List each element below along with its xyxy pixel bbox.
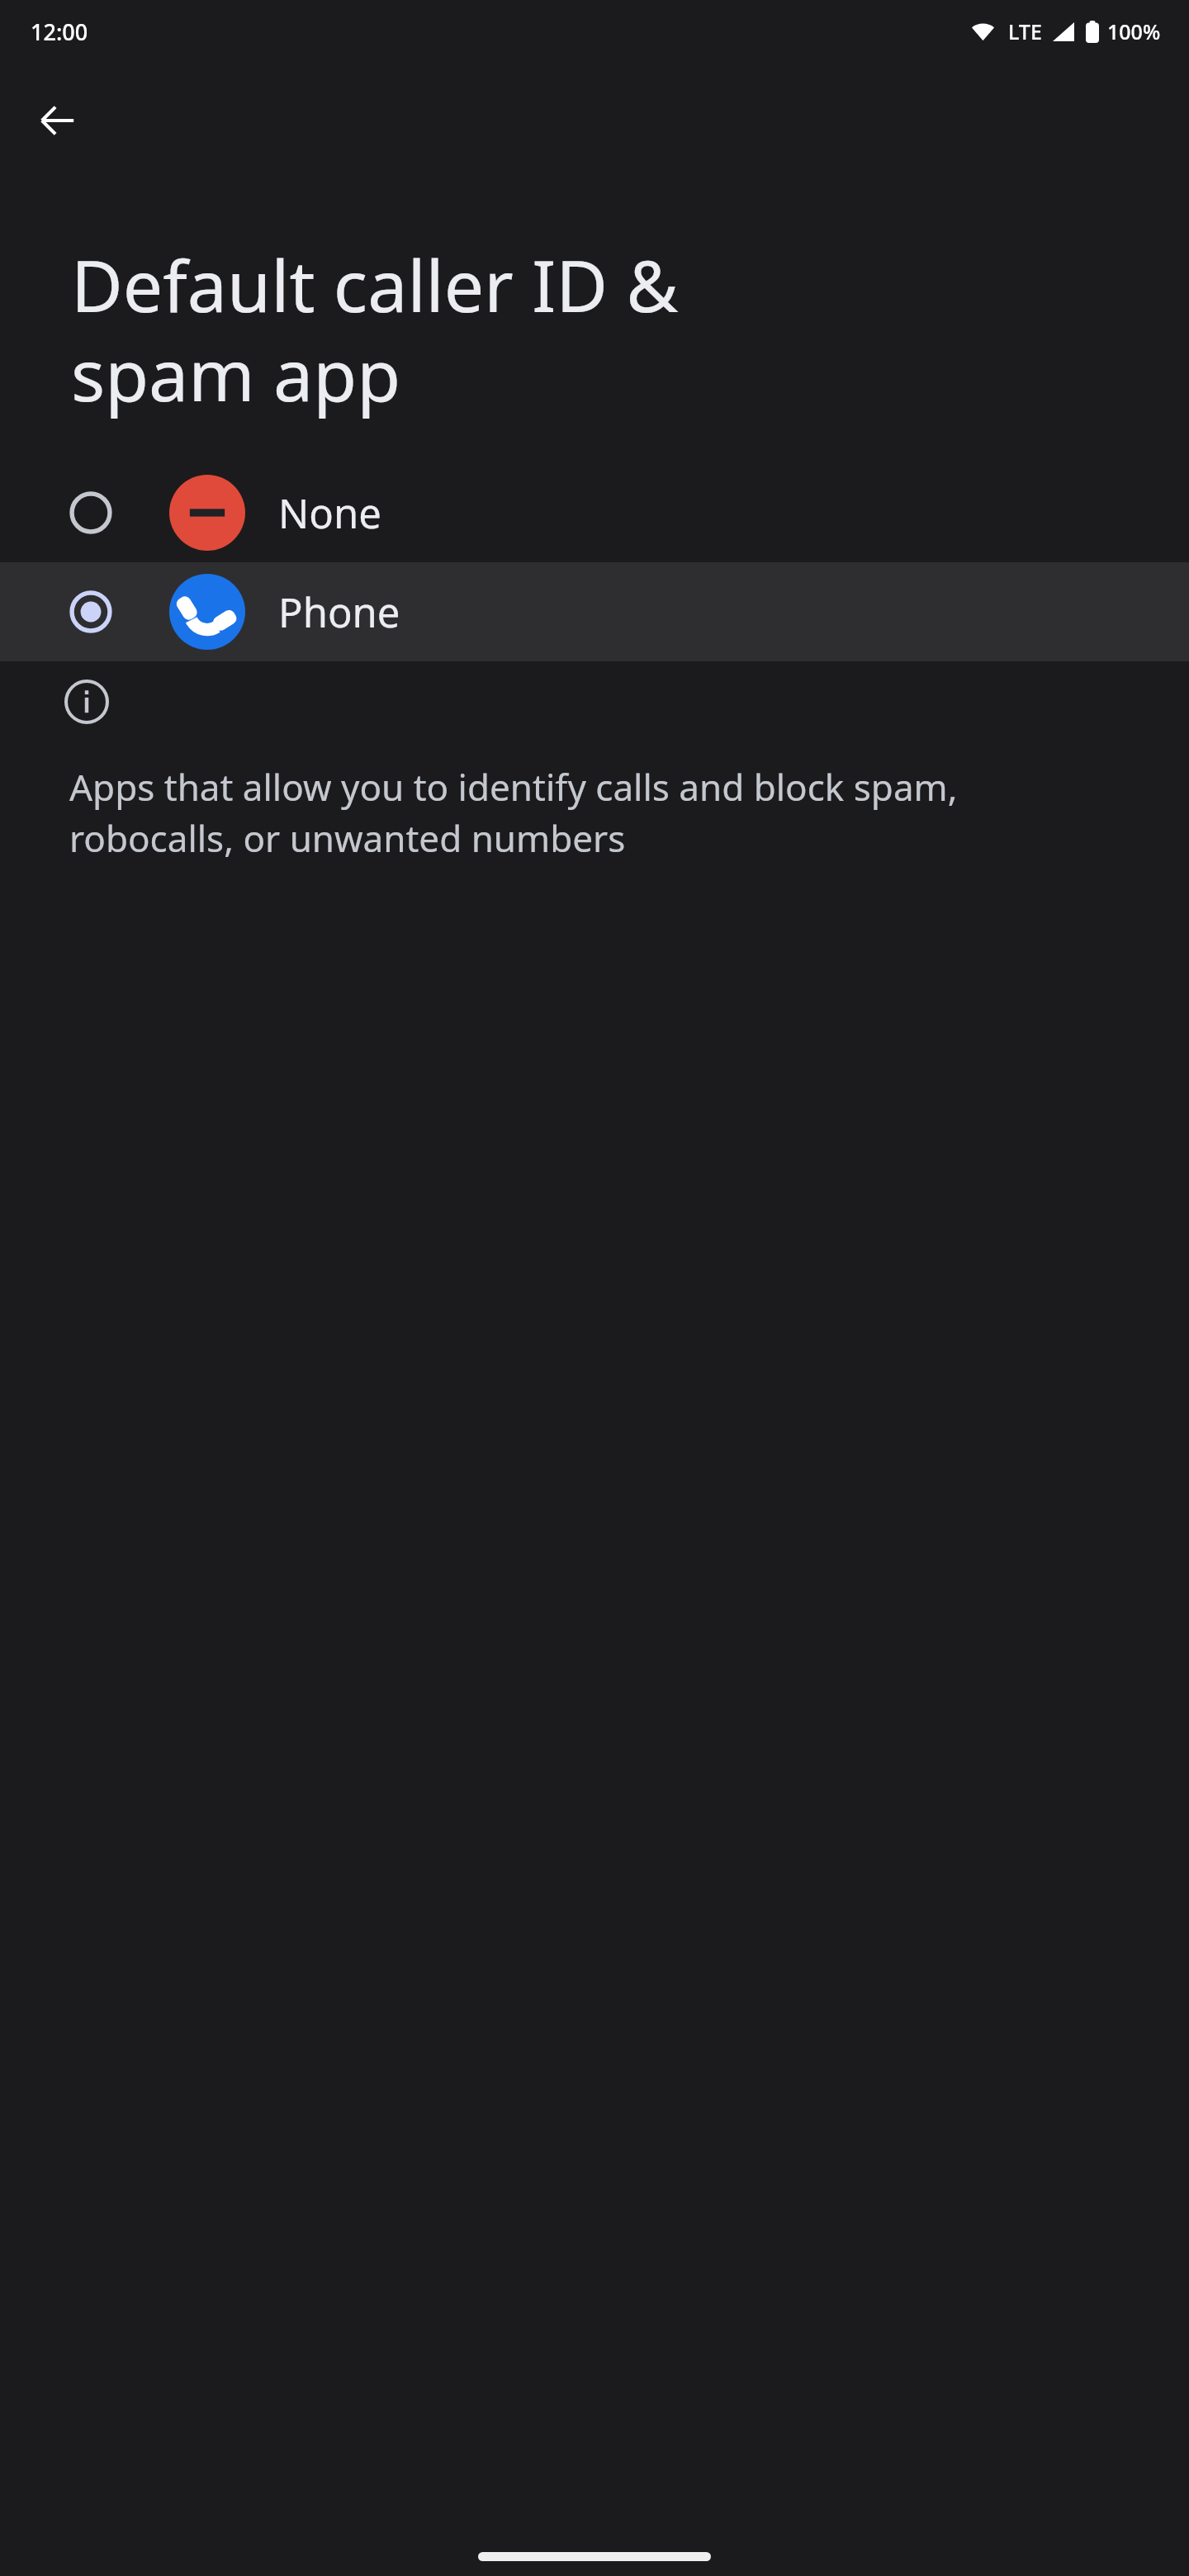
staticText: Default caller ID & spam app <box>71 236 1139 422</box>
staticText: 12:00 <box>31 17 88 47</box>
button[interactable]: Phone <box>0 562 1189 661</box>
staticText: None <box>278 485 381 541</box>
staticText: Apps that allow you to identify calls an… <box>69 762 958 863</box>
staticText: Phone <box>278 585 400 640</box>
button[interactable]: None <box>0 463 1189 562</box>
button[interactable]: Back <box>18 81 97 160</box>
staticText: 100% <box>1107 17 1161 45</box>
staticText: LTE <box>1008 17 1042 45</box>
